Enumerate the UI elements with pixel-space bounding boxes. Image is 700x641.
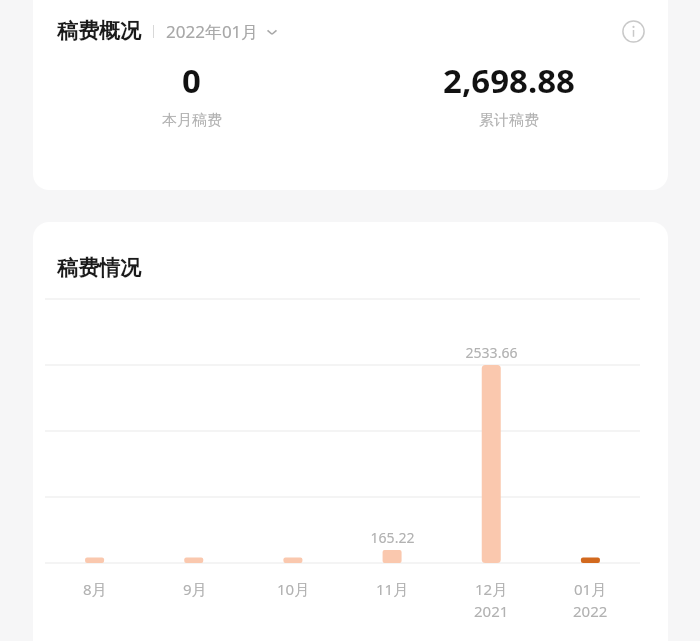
staticText: 01月 [574, 579, 607, 599]
staticText: 稿费情况 [57, 255, 141, 281]
staticText: 8月 [83, 579, 107, 599]
staticText: 2533.66 [442, 343, 541, 362]
staticText: 9月 [183, 579, 207, 599]
staticText: 0 [182, 58, 201, 103]
button[interactable]: 0 [33, 58, 350, 130]
staticText: 11月 [376, 579, 409, 599]
staticText: 2022年01月 [166, 20, 259, 43]
button[interactable]: 2,698.88 [350, 58, 668, 130]
staticText: 12月 [475, 579, 508, 599]
staticText: 2,698.88 [443, 58, 575, 103]
button[interactable]: 2022年01月 [166, 20, 279, 43]
staticText: 2022 [573, 601, 608, 621]
staticText: 2021 [474, 601, 509, 621]
staticText: 稿费概况 [57, 18, 141, 44]
button[interactable]: 说明 [616, 14, 650, 48]
staticText: 165.22 [343, 528, 442, 547]
staticText: 累计稿费 [479, 111, 539, 130]
staticText: 本月稿费 [162, 111, 222, 130]
staticText: 10月 [277, 579, 310, 599]
